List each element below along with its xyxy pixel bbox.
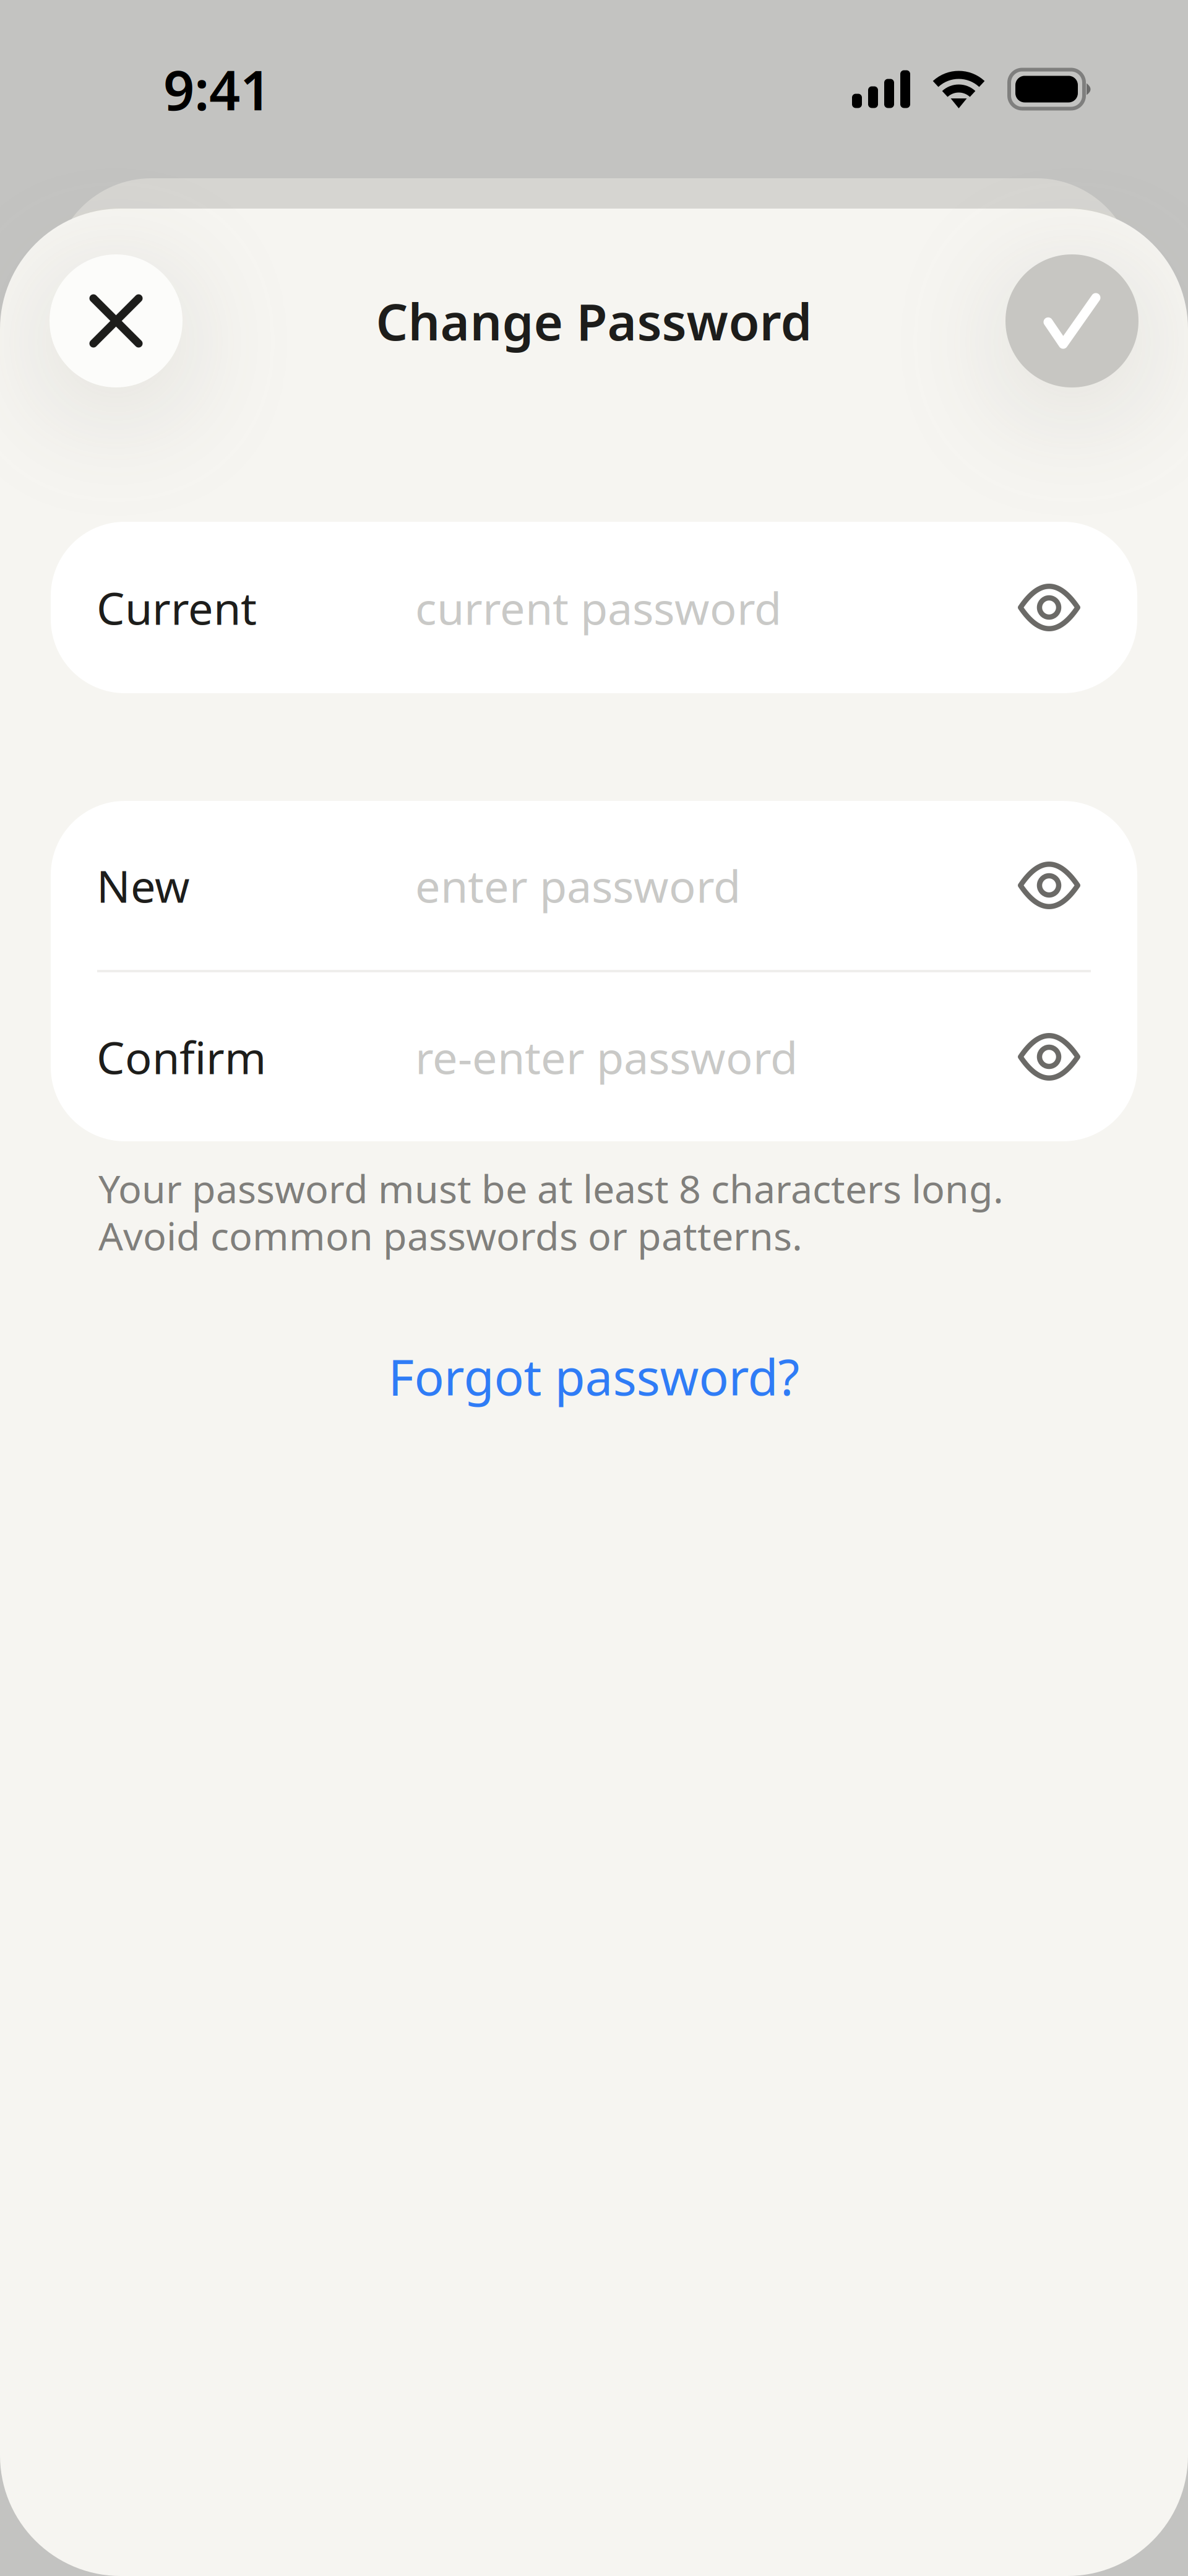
staticText: New [97, 856, 190, 915]
button[interactable]: Show Confirm password [961, 972, 1137, 1141]
staticText: Your password must be at least 8 charact… [98, 1162, 1004, 1214]
staticText: Forgot password? [388, 1343, 800, 1409]
staticText: enter password [415, 856, 741, 915]
staticText: 9:41 [163, 53, 271, 125]
button[interactable]: Save [1005, 254, 1138, 387]
staticText: Current [97, 578, 257, 637]
staticText: Change Password [376, 287, 812, 354]
staticText: Confirm [97, 1027, 266, 1086]
staticText: re-enter password [415, 1027, 798, 1086]
staticText: current password [415, 578, 781, 637]
button[interactable]: Forgot password? [361, 1328, 827, 1424]
button[interactable]: Show New password [961, 801, 1137, 970]
button[interactable]: Show Current password [961, 522, 1137, 693]
staticText: Avoid common passwords or patterns. [98, 1210, 803, 1261]
button[interactable]: Close [49, 254, 183, 387]
